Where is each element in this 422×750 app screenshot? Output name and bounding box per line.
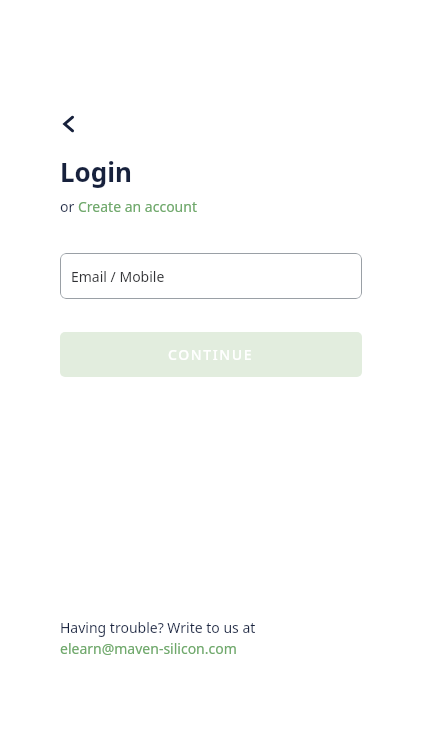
button[interactable]: Create an account [78,197,197,216]
staticText: Login [60,154,132,189]
staticText: Create an account [78,197,197,216]
button[interactable]: elearn@maven-silicon.com [60,639,237,658]
staticText: elearn@maven-silicon.com [60,639,237,658]
staticText: Email / Mobile [71,267,165,286]
button[interactable]: Back [60,108,92,140]
staticText: CONTINUE [168,345,254,364]
button[interactable]: Email / Mobile [60,253,362,299]
button[interactable]: CONTINUE [60,332,362,377]
staticText: or [60,197,78,216]
staticText: Having trouble? Write to us at [60,618,256,637]
